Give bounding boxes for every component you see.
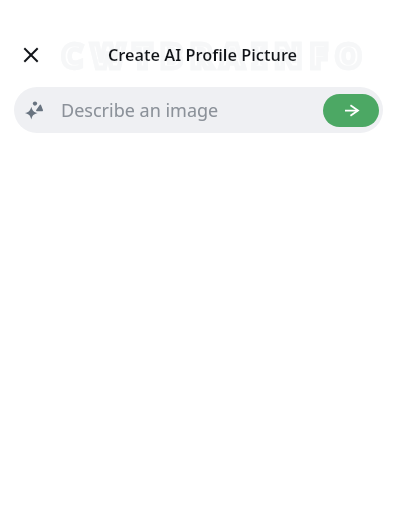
button[interactable]: Generate image xyxy=(323,94,379,127)
staticText: Create AI Profile Picture xyxy=(3,44,399,66)
staticText: Describe an image xyxy=(61,98,219,123)
staticText: CWTBRAINFO xyxy=(16,33,399,78)
button[interactable]: Close xyxy=(15,39,47,71)
button[interactable]: Describe an image xyxy=(14,87,383,133)
